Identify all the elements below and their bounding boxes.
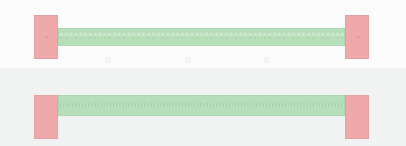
button[interactable]: End marker [345, 15, 369, 59]
button[interactable]: Start marker [34, 15, 58, 59]
button[interactable]: Track two [58, 95, 345, 116]
button[interactable]: Start marker [34, 95, 58, 139]
button[interactable]: End marker [345, 95, 369, 139]
button[interactable]: Start marker [0, 0, 406, 68]
button[interactable]: Start marker [0, 68, 406, 146]
button[interactable]: Track one [58, 28, 345, 46]
